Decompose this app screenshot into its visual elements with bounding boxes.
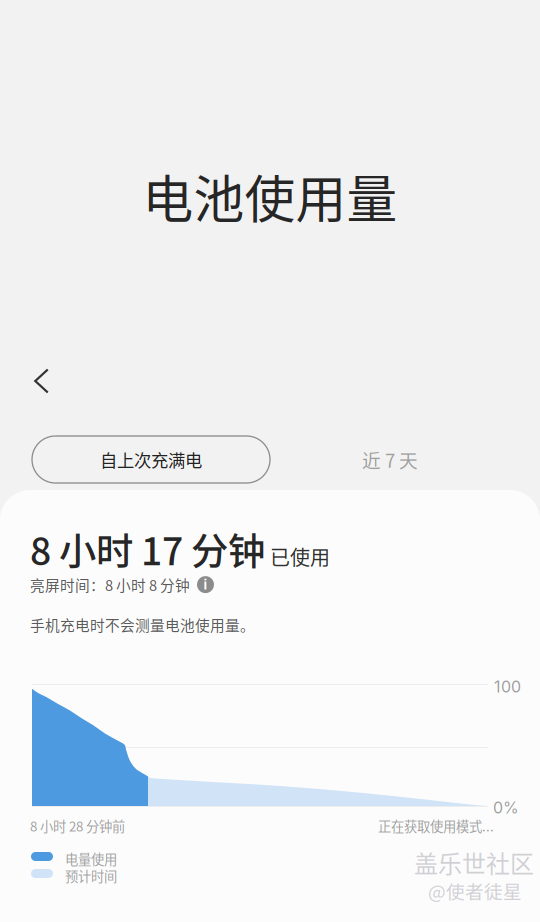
staticText: 0%: [493, 798, 519, 817]
staticText: 正在获取使用模式...: [378, 816, 494, 835]
staticText: 已使用: [270, 542, 330, 571]
staticText: 盖乐世社区: [414, 845, 534, 880]
button[interactable]: Back: [14, 354, 68, 408]
button[interactable]: 自上次充满电: [32, 436, 270, 483]
staticText: 预计时间: [65, 866, 117, 885]
staticText: 8 小时 28 分钟前: [30, 816, 125, 835]
staticText: 手机充电时不会测量电池使用量。: [30, 614, 255, 635]
staticText: @使者徒星: [428, 877, 522, 904]
staticText: i: [203, 577, 207, 593]
staticText: 亮屏时间：8 小时 8 分钟: [30, 574, 190, 595]
staticText: 8 小时 17 分钟: [30, 522, 265, 576]
button[interactable]: 近 7 天: [335, 436, 445, 483]
staticText: 近 7 天: [362, 446, 418, 473]
staticText: 电池使用量: [142, 159, 397, 233]
staticText: 电量使用: [65, 849, 117, 868]
staticText: 自上次充满电: [100, 447, 202, 472]
staticText: 100: [494, 677, 521, 696]
